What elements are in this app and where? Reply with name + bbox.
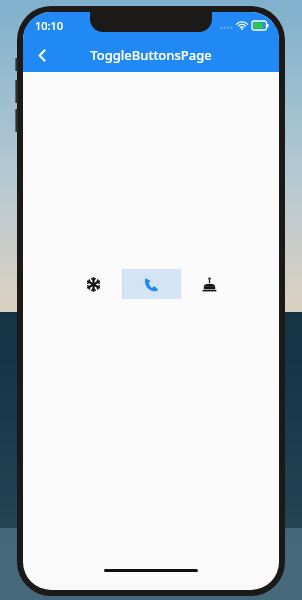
button[interactable]: Air conditioning xyxy=(64,269,122,299)
button[interactable]: Back xyxy=(23,38,61,72)
staticText: ToggleButtonsPage xyxy=(90,46,212,64)
button[interactable]: Call xyxy=(123,269,180,299)
button[interactable]: Birthday xyxy=(181,269,238,299)
staticText: 10:10 xyxy=(35,18,64,33)
